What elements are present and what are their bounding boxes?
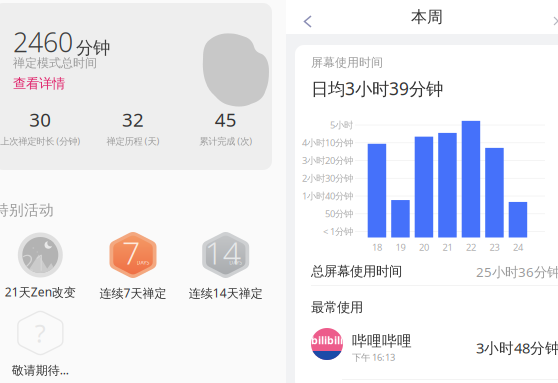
staticText: 总屏幕使用时间: [311, 263, 402, 279]
staticText: 连续14天禅定: [189, 285, 263, 301]
staticText: 敬请期待...: [12, 362, 69, 378]
staticText: 22: [466, 241, 476, 253]
staticText: < 1分钟: [323, 225, 353, 238]
staticText: 14: [205, 231, 241, 273]
staticText: 下午 16:13: [352, 351, 395, 363]
button[interactable]: 21: [0, 232, 87, 300]
staticText: 45: [215, 107, 237, 132]
staticText: 最常使用: [311, 299, 363, 315]
staticText: 7: [122, 231, 140, 273]
staticText: 屏幕使用时间: [311, 55, 383, 70]
staticText: 20: [419, 241, 429, 253]
staticText: 3小时20分钟: [302, 154, 353, 167]
staticText: 21: [21, 247, 47, 277]
staticText: DAYS: [229, 259, 242, 266]
staticText: 19: [395, 241, 405, 253]
staticText: 23: [489, 241, 499, 253]
staticText: ?: [35, 316, 46, 350]
staticText: 32: [122, 107, 144, 132]
staticText: 21: [442, 241, 452, 253]
staticText: 特别活动: [0, 201, 54, 219]
staticText: 本周: [411, 7, 443, 27]
staticText: 5小时: [330, 119, 353, 131]
button[interactable]: 查看详情: [13, 77, 163, 90]
button[interactable]: 7: [87, 231, 179, 301]
staticText: 日均3小时39分钟: [311, 77, 443, 100]
staticText: 3小时48分钟: [476, 338, 558, 357]
staticText: 18: [372, 241, 382, 253]
staticText: bilibili: [311, 333, 343, 347]
staticText: 2小时30分钟: [302, 172, 353, 184]
staticText: DAYS: [136, 259, 149, 266]
staticText: 25小时36分钟: [476, 263, 558, 281]
staticText: 哔哩哔哩: [352, 332, 412, 350]
staticText: 连续7天禅定: [99, 285, 166, 301]
button[interactable]: Back: [293, 5, 322, 38]
button[interactable]: 14: [179, 231, 272, 301]
staticText: 21天Zen改变: [5, 284, 76, 300]
staticText: 查看详情: [13, 75, 65, 92]
staticText: 分钟: [76, 37, 110, 59]
staticText: 2460: [13, 24, 73, 60]
staticText: 30: [29, 107, 51, 132]
staticText: 禅定历程 (天): [106, 135, 159, 147]
button[interactable]: Close: [543, 6, 558, 36]
staticText: 1小时40分钟: [302, 190, 353, 202]
staticText: 50分钟: [325, 207, 353, 220]
staticText: 上次禅定时长 (分钟): [0, 135, 80, 147]
button[interactable]: ?: [0, 310, 87, 378]
staticText: 累计完成 (次): [199, 135, 252, 147]
staticText: 禅定模式总时间: [13, 56, 97, 70]
staticText: 24: [513, 241, 523, 253]
staticText: 4小时10分钟: [302, 136, 353, 149]
